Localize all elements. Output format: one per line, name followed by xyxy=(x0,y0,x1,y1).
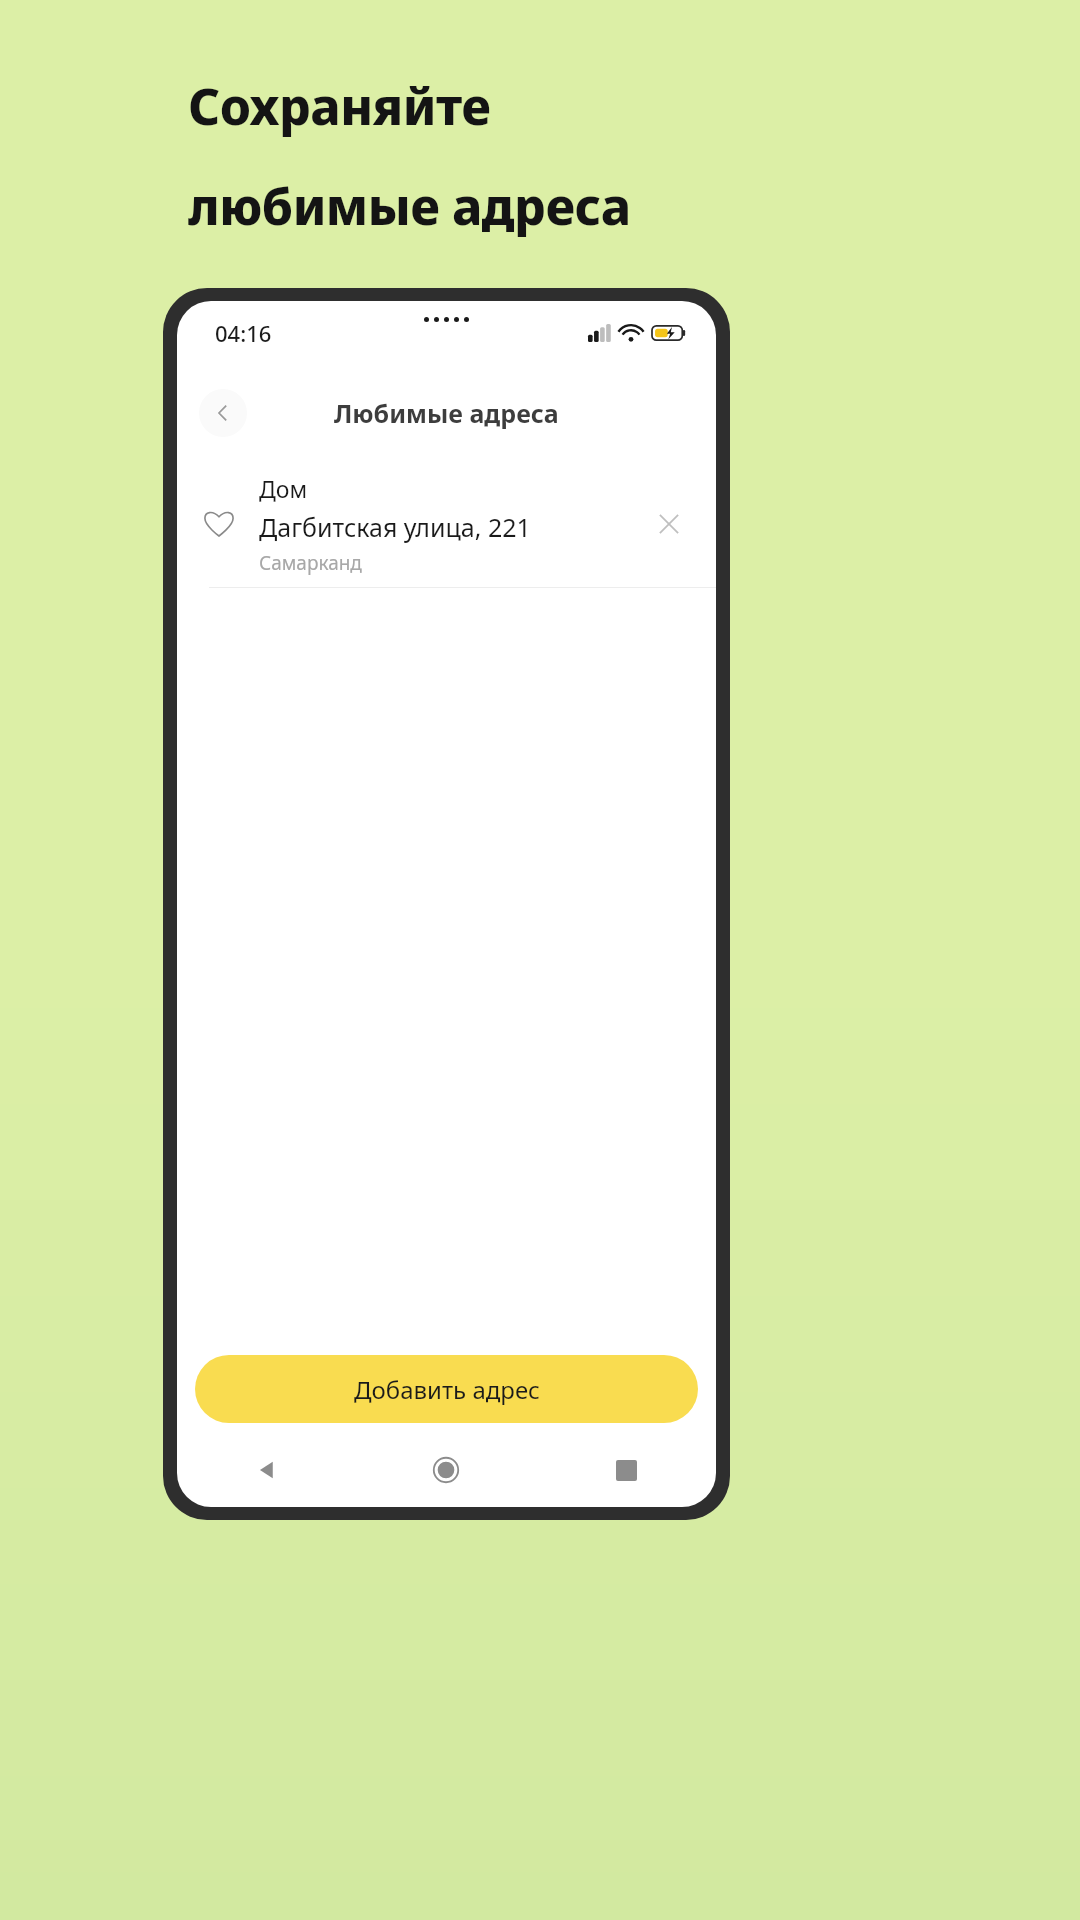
staticText: Сохраняйте xyxy=(188,72,491,140)
button[interactable]: Назад xyxy=(199,389,247,437)
staticText: Самарканд xyxy=(259,550,362,576)
button[interactable]: Удалить адрес xyxy=(646,501,692,547)
staticText: Любимые адреса xyxy=(334,396,559,430)
staticText: Добавить адрес xyxy=(354,1373,540,1406)
staticText: 04:16 xyxy=(215,318,272,348)
staticText: Дом xyxy=(259,473,308,504)
staticText: Дагбитская улица, 221 xyxy=(259,510,531,544)
button[interactable]: Недавние приложения xyxy=(536,1441,716,1499)
button[interactable]: Добавить адрес xyxy=(195,1355,698,1423)
button[interactable]: Дом xyxy=(177,461,716,587)
staticText: любимые адреса xyxy=(188,172,631,240)
button[interactable]: Назад xyxy=(177,1441,356,1499)
button[interactable]: Главный экран xyxy=(356,1441,536,1499)
